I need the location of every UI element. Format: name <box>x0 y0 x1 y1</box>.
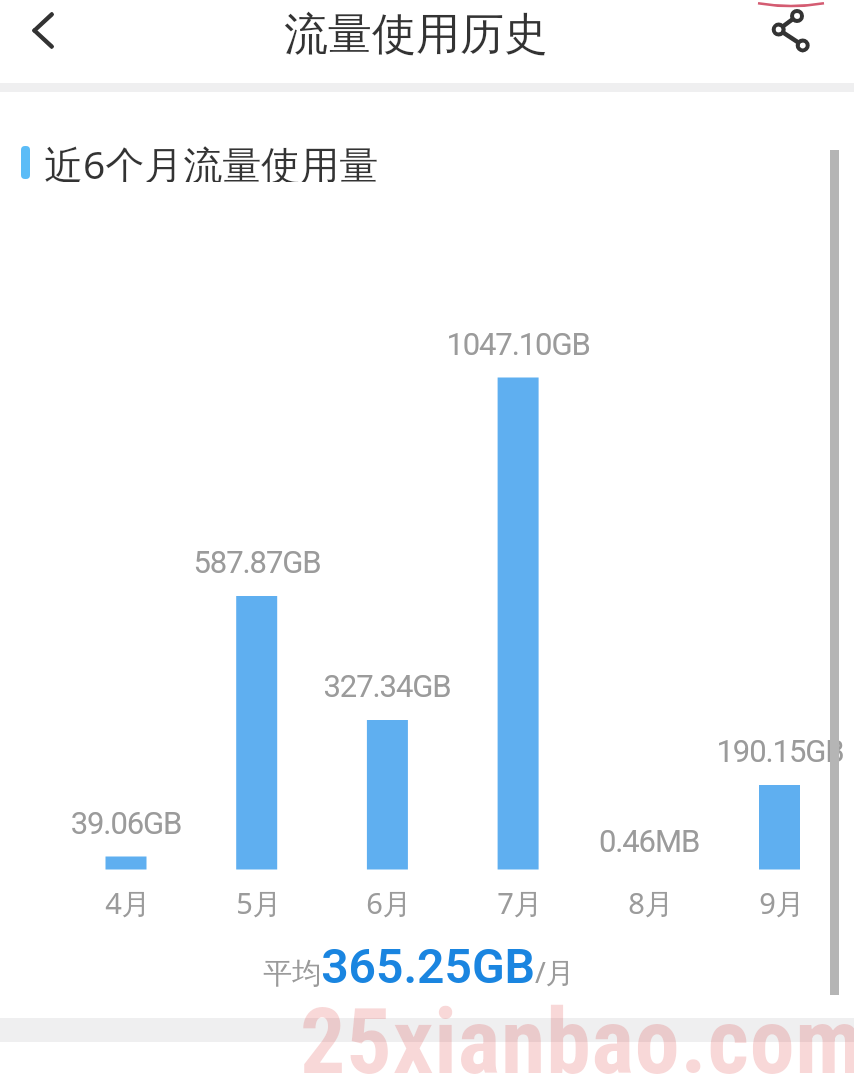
staticText: 5月 <box>199 883 319 923</box>
staticText: 25xianbao.com <box>300 990 854 1078</box>
staticText: 587.87GB <box>137 544 377 580</box>
button[interactable]: 近6个月流量使用量 <box>0 140 854 185</box>
staticText: 8月 <box>591 883 711 923</box>
staticText: 0.46MB <box>529 823 769 859</box>
staticText: 流量使用历史 <box>284 7 548 62</box>
button[interactable]: Back <box>7 0 79 72</box>
staticText: 6月 <box>329 883 449 923</box>
button[interactable]: Share <box>758 0 820 62</box>
staticText: 1047.10GB <box>398 326 638 362</box>
staticText: 近6个月流量使用量 <box>44 137 379 182</box>
staticText: 9月 <box>722 883 842 923</box>
staticText: 327.34GB <box>267 668 507 704</box>
staticText: 190.15GB <box>660 733 854 769</box>
staticText: 7月 <box>460 883 580 923</box>
staticText: 平均365.25GB/月 <box>0 938 846 994</box>
staticText: 39.06GB <box>6 805 246 841</box>
staticText: 4月 <box>68 883 188 923</box>
